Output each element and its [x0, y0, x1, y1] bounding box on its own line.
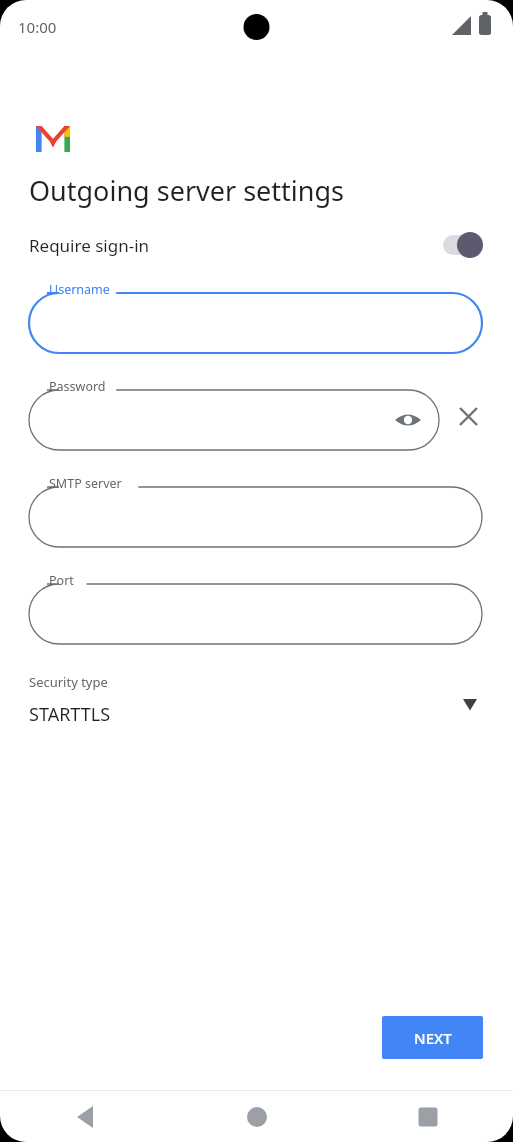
button[interactable]: Require sign-in: [0, 225, 513, 265]
button[interactable]: Security type: [0, 673, 513, 727]
button[interactable]: Require sign-in: [439, 229, 495, 261]
staticText: STARTTLS: [29, 702, 111, 727]
button[interactable]: Recents: [342, 1091, 513, 1142]
button[interactable]: SMTP server: [29, 475, 482, 550]
staticText: Security type: [29, 673, 108, 691]
staticText: SMTP server: [49, 475, 122, 492]
button[interactable]: Home: [171, 1091, 342, 1142]
staticText: Username: [49, 281, 110, 298]
staticText: Password: [49, 378, 106, 395]
button[interactable]: NEXT: [382, 1016, 483, 1059]
button[interactable]: Password: [29, 378, 439, 453]
button[interactable]: Username: [29, 281, 482, 356]
button[interactable]: Port: [29, 572, 482, 647]
button[interactable]: Clear password: [449, 397, 487, 435]
staticText: NEXT: [414, 1028, 452, 1048]
button[interactable]: Back: [0, 1091, 171, 1142]
staticText: Require sign-in: [29, 234, 150, 257]
staticText: 10:00: [18, 17, 57, 37]
staticText: Outgoing server settings: [29, 172, 345, 209]
staticText: Port: [49, 572, 74, 589]
